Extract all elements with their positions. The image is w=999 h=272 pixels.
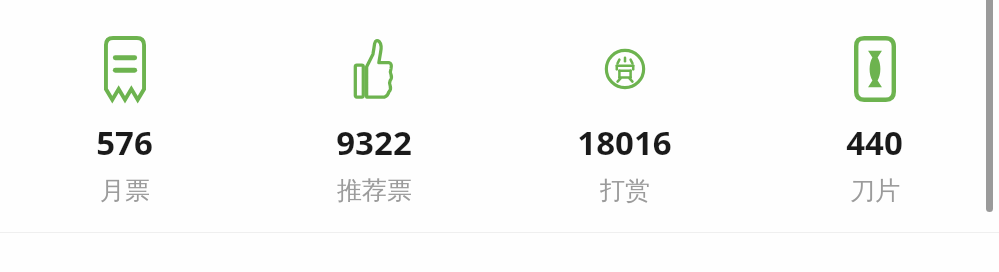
staticText: 18016 (577, 120, 672, 165)
staticText: 576 (96, 120, 153, 165)
other: Recommendation votes (353, 36, 395, 102)
button[interactable]: Blades (846, 30, 903, 212)
staticText: 440 (846, 120, 903, 165)
staticText: 打赏 (600, 175, 650, 206)
other: Monthly tickets (104, 36, 146, 102)
other: Blades (854, 36, 896, 102)
staticText: 月票 (100, 175, 150, 206)
button[interactable]: Rewards (577, 30, 672, 212)
button[interactable]: Monthly tickets (96, 30, 153, 212)
other: Rewards (604, 36, 646, 102)
staticText: 推荐票 (337, 175, 412, 206)
staticText: 刀片 (850, 175, 900, 206)
button[interactable]: Recommendation votes (336, 30, 412, 212)
staticText: 9322 (336, 120, 412, 165)
